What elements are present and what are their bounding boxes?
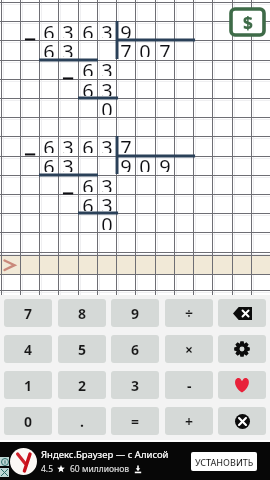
button[interactable]: Yandex Browser	[10, 448, 37, 475]
staticText: 6	[43, 38, 55, 57]
staticText: =	[131, 412, 140, 431]
button[interactable]: Remove ads	[229, 7, 266, 37]
staticText: 3	[101, 192, 113, 211]
staticText: ×	[185, 340, 194, 359]
staticText: -	[187, 376, 192, 395]
button[interactable]: 6	[111, 335, 159, 363]
staticText: 6	[131, 340, 140, 359]
staticText: 5	[78, 340, 87, 359]
staticText: 3	[131, 376, 140, 395]
button[interactable]: 8	[58, 299, 106, 327]
staticText: 7	[120, 38, 132, 57]
staticText: $	[243, 11, 253, 34]
staticText: УСТАНОВИТЬ	[195, 456, 254, 468]
button[interactable]: 5	[58, 335, 106, 363]
staticText: 6	[43, 19, 55, 38]
staticText: 3	[101, 173, 113, 192]
button[interactable]: 9	[111, 299, 159, 327]
staticText: 7	[120, 134, 132, 153]
staticText: 3	[101, 134, 113, 153]
staticText: 6	[43, 153, 55, 172]
staticText: .	[80, 412, 84, 431]
staticText: 0	[101, 96, 113, 115]
button[interactable]: УСТАНОВИТЬ	[191, 452, 257, 471]
staticText: 3	[62, 134, 74, 153]
staticText: 3	[101, 77, 113, 96]
staticText: 7	[24, 304, 33, 323]
button[interactable]: Expression input	[0, 255, 270, 275]
button[interactable]: Yandex Browser	[0, 442, 270, 480]
button[interactable]: Favorites	[218, 371, 266, 399]
button[interactable]: 3	[111, 371, 159, 399]
staticText: 3	[62, 19, 74, 38]
button[interactable]: -	[165, 371, 213, 399]
staticText: 1	[24, 376, 33, 395]
button[interactable]: 7	[4, 299, 52, 327]
button[interactable]: =	[111, 407, 159, 435]
staticText: 2	[78, 376, 87, 395]
staticText: 3	[62, 153, 74, 172]
button[interactable]: 0	[4, 407, 52, 435]
staticText: 6	[82, 192, 94, 211]
staticText: 3	[101, 19, 113, 38]
staticText: 0	[139, 38, 151, 57]
staticText: 6	[82, 134, 94, 153]
button[interactable]: Clear all	[218, 407, 266, 435]
staticText: 6	[82, 173, 94, 192]
button[interactable]: Backspace	[218, 299, 266, 327]
staticText: Яндекс.Браузер — с Алисой	[41, 448, 169, 461]
button[interactable]: ÷	[165, 299, 213, 327]
button[interactable]: ×	[165, 335, 213, 363]
staticText: 6	[82, 19, 94, 38]
staticText: 60 миллионов	[70, 463, 130, 475]
staticText: 9	[120, 153, 132, 172]
staticText: 8	[78, 304, 87, 323]
button[interactable]: +	[165, 407, 213, 435]
staticText: 4.5	[41, 463, 54, 475]
button[interactable]: Settings	[218, 335, 266, 363]
staticText: 0	[24, 412, 33, 431]
staticText: 6	[82, 57, 94, 76]
staticText: 9	[159, 153, 171, 172]
staticText: 3	[62, 38, 74, 57]
staticText: 4	[24, 340, 33, 359]
staticText: 3	[101, 57, 113, 76]
button[interactable]: 1	[4, 371, 52, 399]
staticText: 9	[120, 19, 132, 38]
button[interactable]: Close ad	[0, 468, 9, 477]
staticText: 6	[82, 77, 94, 96]
staticText: +	[185, 412, 194, 431]
staticText: ÷	[185, 304, 194, 323]
button[interactable]: Ad info	[0, 457, 9, 466]
button[interactable]: 2	[58, 371, 106, 399]
button[interactable]: 4	[4, 335, 52, 363]
button[interactable]: .	[58, 407, 106, 435]
staticText: 0	[101, 211, 113, 230]
staticText: 7	[159, 38, 171, 57]
staticText: 6	[43, 134, 55, 153]
staticText: 0	[139, 153, 151, 172]
staticText: 9	[131, 304, 140, 323]
